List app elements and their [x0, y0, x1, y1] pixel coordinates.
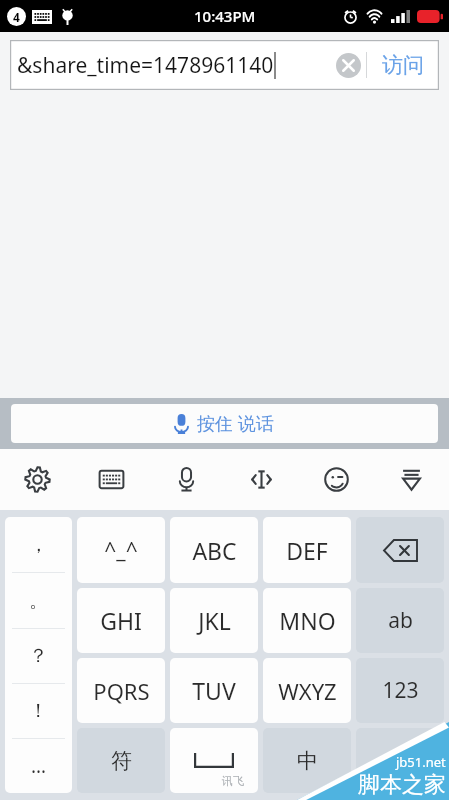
staticText: ，: [29, 533, 48, 557]
staticText: 访问: [382, 52, 424, 78]
button[interactable]: Move cursor: [224, 449, 299, 510]
button[interactable]: ^_^: [77, 517, 165, 583]
staticText: 符: [111, 748, 132, 774]
staticText: ？: [29, 644, 48, 668]
staticText: 讯飞: [222, 774, 244, 788]
staticText: 脚本之家: [358, 771, 446, 799]
staticText: 。: [29, 589, 48, 613]
staticText: JKL: [198, 605, 231, 636]
staticText: DEF: [286, 535, 328, 566]
staticText: 10:43PM: [194, 6, 256, 26]
button[interactable]: ABC: [170, 517, 258, 583]
staticText: TUV: [192, 675, 236, 706]
button[interactable]: Hide keyboard: [374, 449, 449, 510]
button[interactable]: TUV: [170, 658, 258, 723]
staticText: 4: [13, 9, 20, 25]
button[interactable]: 中: [263, 728, 351, 793]
button[interactable]: Delete: [356, 517, 444, 583]
staticText: ！: [29, 699, 48, 723]
staticText: &share_time=1478961140: [17, 51, 274, 80]
button[interactable]: 123: [356, 658, 444, 723]
button[interactable]: ！: [5, 684, 72, 738]
button[interactable]: Enter: [356, 728, 444, 793]
staticText: jb51.net: [396, 753, 446, 771]
button[interactable]: Emoji: [299, 449, 374, 510]
button[interactable]: 。: [5, 573, 72, 628]
button[interactable]: ，: [5, 517, 72, 572]
button[interactable]: ？: [5, 629, 72, 683]
button[interactable]: WXYZ: [263, 658, 351, 723]
button[interactable]: Keyboard layout: [74, 449, 149, 510]
button[interactable]: GHI: [77, 588, 165, 653]
button[interactable]: …: [5, 739, 72, 793]
staticText: PQRS: [93, 676, 150, 706]
button[interactable]: Clear text: [330, 47, 366, 83]
staticText: ABC: [192, 535, 237, 566]
staticText: ^_^: [104, 536, 138, 565]
button[interactable]: Voice input: [149, 449, 224, 510]
button[interactable]: MNO: [263, 588, 351, 653]
button[interactable]: 访问: [367, 40, 439, 90]
button[interactable]: Settings: [0, 449, 74, 510]
button[interactable]: 符: [77, 728, 165, 793]
button[interactable]: 按住 说话: [11, 404, 438, 443]
staticText: ab: [388, 606, 413, 635]
staticText: 按住 说话: [197, 411, 274, 436]
button[interactable]: ab: [356, 588, 444, 653]
staticText: 123: [382, 676, 419, 705]
staticText: 中: [297, 748, 318, 774]
button[interactable]: PQRS: [77, 658, 165, 723]
button[interactable]: Space: [170, 728, 258, 793]
button[interactable]: JKL: [170, 588, 258, 653]
staticText: GHI: [100, 605, 142, 636]
staticText: WXYZ: [278, 676, 337, 706]
button[interactable]: DEF: [263, 517, 351, 583]
staticText: MNO: [279, 605, 336, 636]
staticText: …: [31, 753, 47, 779]
